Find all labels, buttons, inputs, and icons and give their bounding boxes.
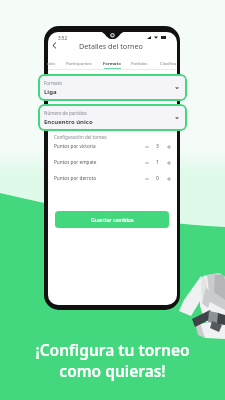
staticText: como quieras!	[59, 360, 166, 381]
staticText: Puntos por derrota	[54, 175, 96, 181]
staticText: ¡Configura tu torneo	[35, 339, 190, 360]
staticText: 3:52	[58, 35, 68, 41]
button[interactable]: Increase Puntos por victoria	[164, 142, 173, 151]
button[interactable]: Partidos	[130, 58, 149, 70]
staticText: Participantes	[66, 61, 92, 67]
staticText: 1	[156, 159, 159, 166]
button[interactable]: Increase Puntos por derrota	[164, 174, 173, 183]
staticText: 0	[156, 175, 159, 182]
staticText: Partidos	[131, 61, 148, 67]
button[interactable]: Formato	[102, 58, 121, 70]
button[interactable]: Back	[48, 39, 61, 52]
staticText: 3	[156, 143, 159, 150]
button[interactable]: Participantes	[65, 58, 92, 70]
staticText: Número de partidos	[44, 110, 87, 116]
button[interactable]: Formato	[38, 74, 187, 101]
button[interactable]: Clasifica	[157, 58, 179, 70]
staticText: Guardar cambios	[91, 216, 134, 223]
button[interactable]: Decrease Puntos por derrota	[142, 174, 151, 183]
staticText: Formato	[44, 80, 62, 86]
staticText: Formato	[103, 61, 121, 67]
button[interactable]: Guardar cambios	[55, 211, 169, 228]
staticText: Puntos por empate	[54, 159, 97, 165]
button[interactable]: ción	[44, 58, 58, 70]
staticText: Liga	[44, 88, 57, 96]
button[interactable]: Increase Puntos por empate	[164, 158, 173, 167]
staticText: Detalles del torneo	[79, 41, 143, 51]
button[interactable]: Decrease Puntos por victoria	[142, 142, 151, 151]
button[interactable]: Número de partidos	[38, 104, 187, 131]
staticText: ción	[47, 61, 56, 67]
staticText: Configuración del torneo	[54, 134, 107, 140]
staticText: Encuentro único	[44, 118, 93, 126]
staticText: Clasifica	[160, 61, 177, 67]
staticText: Puntos por victoria	[54, 143, 96, 149]
button[interactable]: Decrease Puntos por empate	[142, 158, 151, 167]
